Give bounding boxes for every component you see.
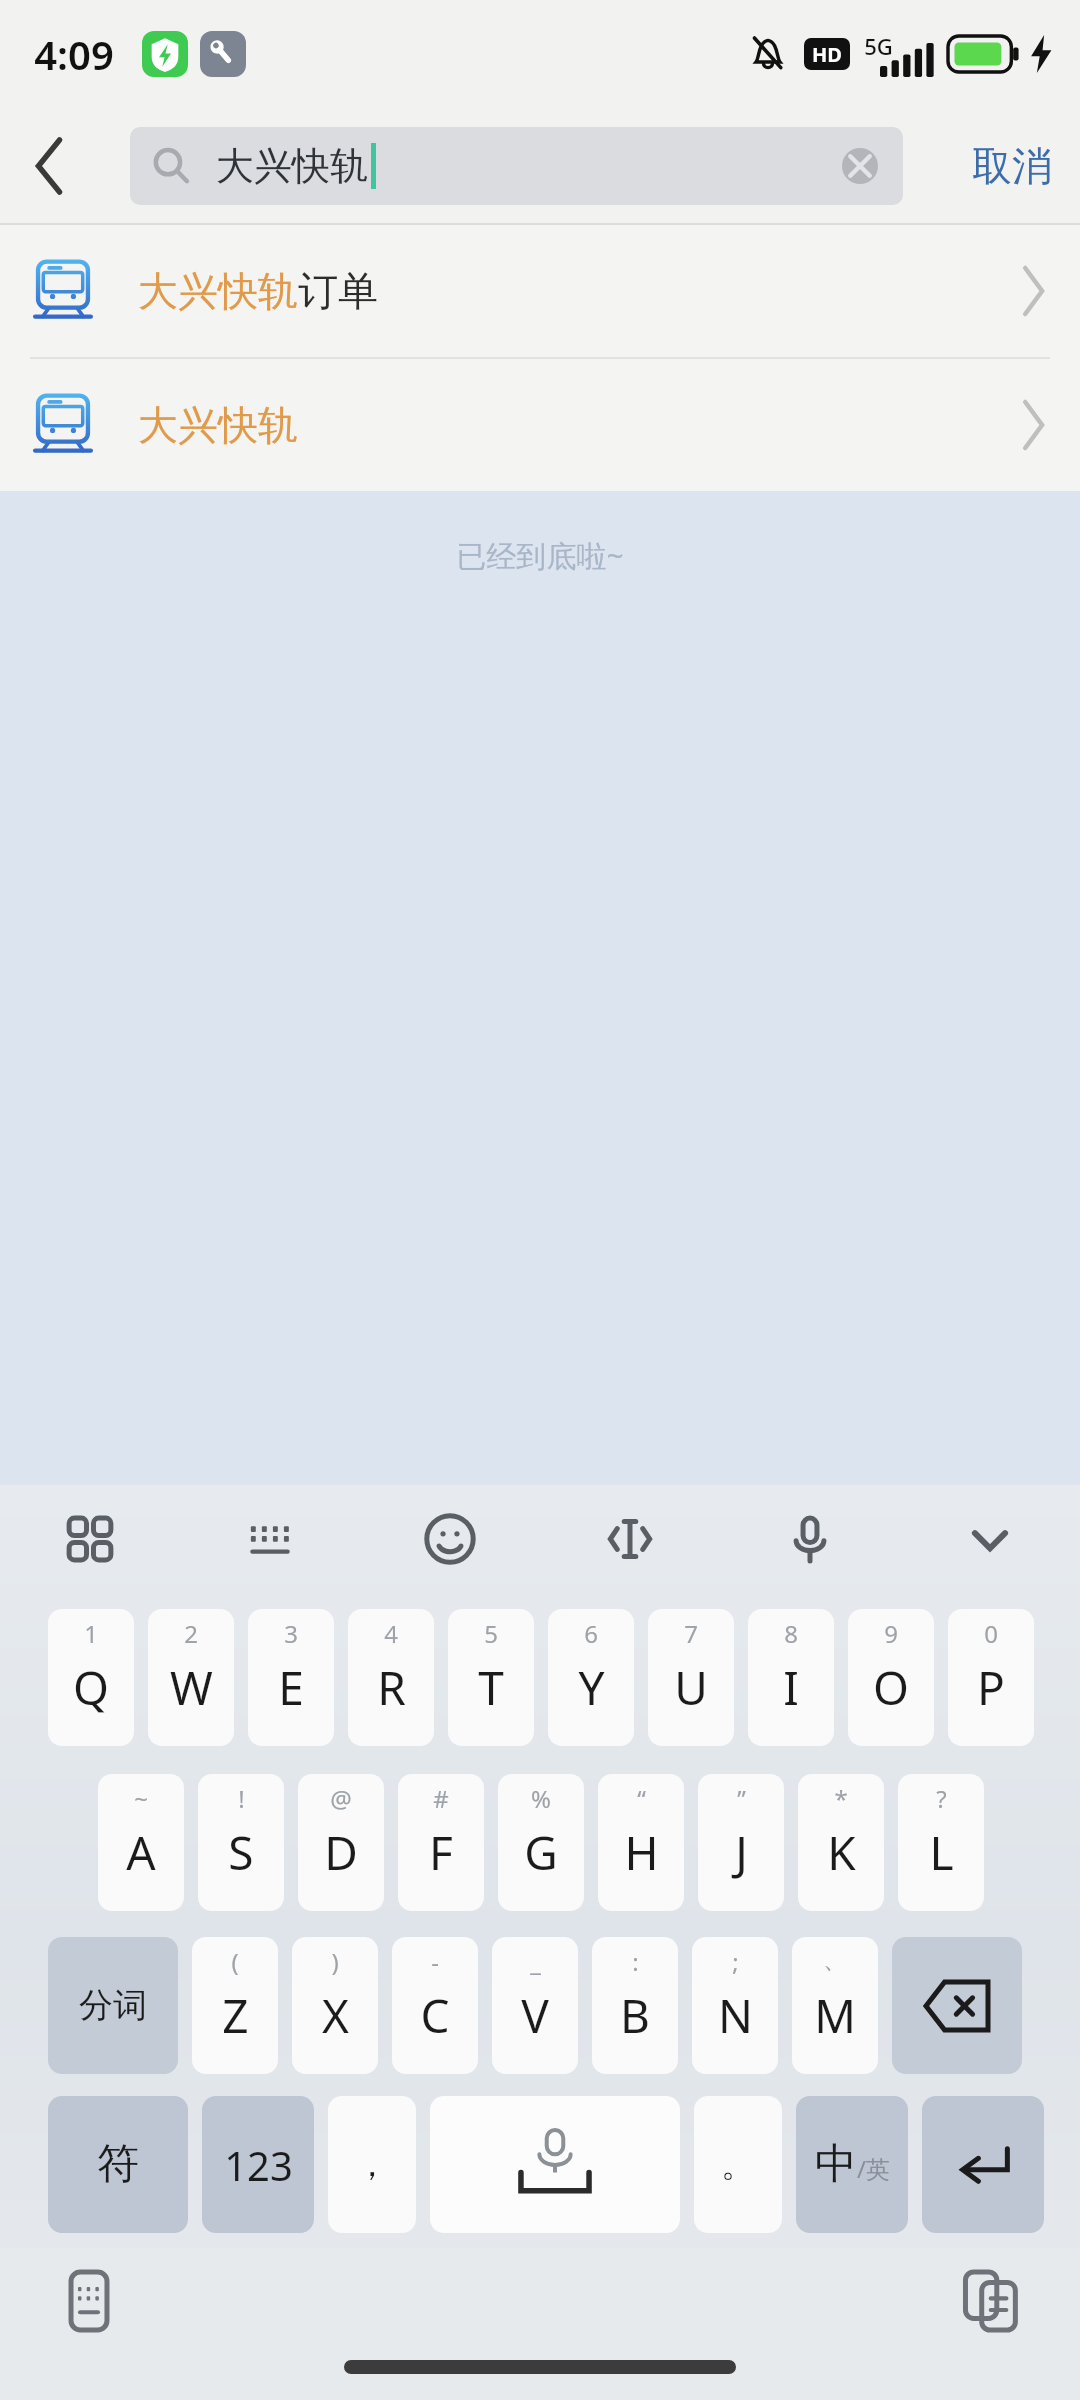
staticText: T — [478, 1656, 504, 1719]
button[interactable]: % — [498, 1774, 584, 1911]
button[interactable]: Hide keyboard — [900, 1485, 1080, 1593]
staticText: ! — [238, 1782, 245, 1815]
button[interactable]: 分词 — [48, 1937, 178, 2074]
staticText: 中/英 — [815, 2138, 890, 2191]
staticText: 5G — [864, 31, 893, 61]
button[interactable]: 符 — [48, 2096, 188, 2233]
staticText: E — [278, 1656, 304, 1719]
staticText: A — [126, 1821, 156, 1884]
button[interactable]: 1 — [48, 1609, 134, 1746]
button[interactable]: 3 — [248, 1609, 334, 1746]
button[interactable]: 取消 — [944, 116, 1080, 216]
button[interactable]: ， — [328, 2096, 416, 2233]
staticText: * — [834, 1782, 848, 1815]
button[interactable]: 5 — [448, 1609, 534, 1746]
button[interactable]: 9 — [848, 1609, 934, 1746]
button[interactable]: 123 — [202, 2096, 314, 2233]
staticText: J — [735, 1821, 748, 1884]
staticText: M — [814, 1984, 856, 2047]
staticText: 1 — [84, 1617, 98, 1650]
button[interactable]: 2 — [148, 1609, 234, 1746]
button[interactable]: Text editing — [540, 1485, 720, 1593]
button[interactable]: Back — [0, 116, 100, 216]
button[interactable]: 大兴快轨 — [130, 127, 903, 205]
staticText: G — [524, 1821, 558, 1884]
staticText: 3 — [284, 1617, 298, 1650]
staticText: N — [718, 1984, 753, 2047]
staticText: R — [377, 1656, 406, 1719]
staticText: P — [977, 1656, 1005, 1719]
staticText: ( — [231, 1945, 239, 1978]
button[interactable]: ? — [898, 1774, 984, 1911]
button[interactable]: 8 — [748, 1609, 834, 1746]
staticText: @ — [330, 1782, 352, 1815]
staticText: ” — [737, 1782, 746, 1815]
staticText: I — [783, 1656, 799, 1719]
staticText: 大兴快轨 — [216, 142, 368, 190]
staticText: W — [170, 1656, 213, 1719]
staticText: 7 — [684, 1617, 698, 1650]
staticText: 6 — [584, 1617, 598, 1650]
staticText: 已经到底啦~ — [456, 535, 624, 576]
staticText: Y — [578, 1656, 605, 1719]
button[interactable]: Delete — [892, 1937, 1022, 2074]
button[interactable]: @ — [298, 1774, 384, 1911]
staticText: 、 — [823, 1945, 847, 1975]
button[interactable]: 0 — [948, 1609, 1034, 1746]
button[interactable]: 大兴快轨订单 — [0, 225, 1080, 357]
button[interactable]: ) — [292, 1937, 378, 2074]
button[interactable]: ! — [198, 1774, 284, 1911]
button[interactable]: ( — [192, 1937, 278, 2074]
button[interactable]: # — [398, 1774, 484, 1911]
button[interactable]: * — [798, 1774, 884, 1911]
staticText: Q — [73, 1656, 109, 1719]
button[interactable]: “ — [598, 1774, 684, 1911]
staticText: O — [873, 1656, 909, 1719]
staticText: 2 — [184, 1617, 198, 1650]
staticText: 4 — [384, 1617, 398, 1650]
staticText: HD — [812, 41, 842, 68]
button[interactable]: - — [392, 1937, 478, 2074]
button[interactable]: Space — [430, 2096, 680, 2233]
button[interactable]: : — [592, 1937, 678, 2074]
staticText: 。 — [721, 2143, 755, 2186]
button[interactable]: Switch keyboard — [52, 2264, 126, 2338]
button[interactable]: ” — [698, 1774, 784, 1911]
staticText: 取消 — [972, 141, 1052, 191]
button[interactable]: ; — [692, 1937, 778, 2074]
staticText: ? — [936, 1782, 947, 1815]
staticText: Z — [222, 1984, 249, 2047]
staticText: U — [674, 1656, 708, 1719]
staticText: % — [531, 1782, 551, 1815]
button[interactable]: Keyboard layout — [180, 1485, 360, 1593]
button[interactable]: 大兴快轨 — [0, 359, 1080, 491]
staticText: 8 — [784, 1617, 798, 1650]
button[interactable]: Clear text — [827, 133, 893, 199]
button[interactable]: Emoji — [360, 1485, 540, 1593]
button[interactable]: Clipboard — [954, 2264, 1028, 2338]
button[interactable]: _ — [492, 1937, 578, 2074]
staticText: 9 — [884, 1617, 898, 1650]
staticText: 大兴快轨订单 — [138, 266, 378, 316]
button[interactable]: Voice input — [720, 1485, 900, 1593]
button[interactable]: Apps — [0, 1485, 180, 1593]
button[interactable]: 、 — [792, 1937, 878, 2074]
staticText: D — [324, 1821, 358, 1884]
staticText: : — [632, 1945, 639, 1978]
staticText: 符 — [97, 2138, 139, 2191]
staticText: 0 — [984, 1617, 998, 1650]
button[interactable]: ~ — [98, 1774, 184, 1911]
staticText: ， — [355, 2143, 389, 2186]
staticText: _ — [530, 1945, 541, 1978]
button[interactable]: 7 — [648, 1609, 734, 1746]
staticText: - — [431, 1945, 439, 1978]
staticText: B — [620, 1984, 650, 2047]
staticText: ~ — [134, 1782, 148, 1815]
button[interactable]: 6 — [548, 1609, 634, 1746]
button[interactable]: 。 — [694, 2096, 782, 2233]
staticText: C — [420, 1984, 450, 2047]
button[interactable]: Enter — [922, 2096, 1044, 2233]
button[interactable]: 4 — [348, 1609, 434, 1746]
button[interactable]: 中/英 — [796, 2096, 908, 2233]
staticText: K — [827, 1821, 856, 1884]
